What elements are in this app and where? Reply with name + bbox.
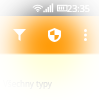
staticText: 23:35 — [67, 2, 91, 14]
button[interactable]: More options — [71, 16, 99, 53]
button[interactable]: Security status — [41, 16, 67, 53]
staticText: Všechny typy — [3, 78, 52, 89]
button[interactable]: Filter — [0, 16, 38, 53]
